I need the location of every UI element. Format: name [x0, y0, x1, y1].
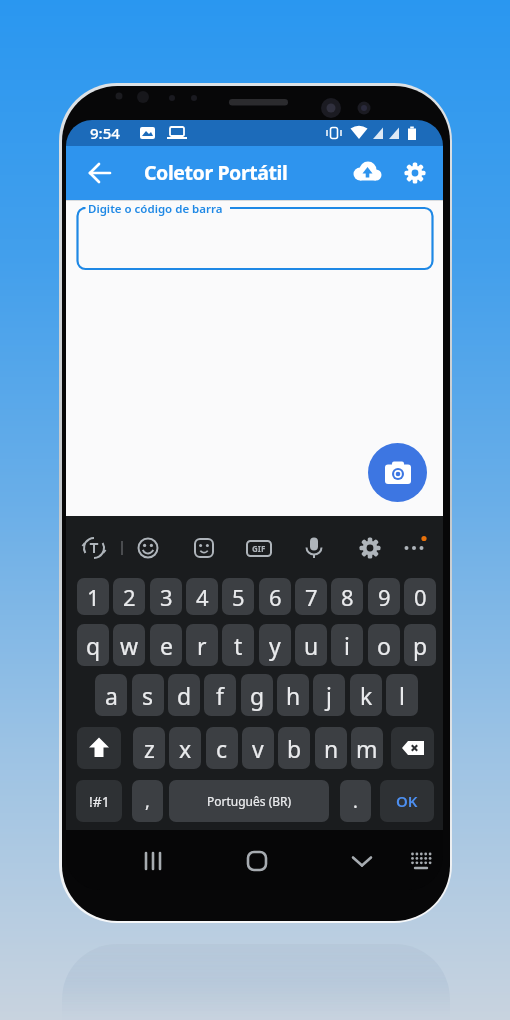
staticText: k [360, 680, 373, 711]
button[interactable] [395, 153, 435, 193]
staticText: Digite o código de barra [88, 201, 223, 217]
staticText: 0 [414, 582, 427, 612]
staticText: p [413, 630, 428, 661]
staticText: Coletor Portátil [144, 159, 288, 186]
staticText: b [287, 733, 302, 764]
button[interactable]: b [278, 727, 310, 769]
staticText: f [216, 680, 224, 711]
button[interactable]: t [222, 624, 254, 666]
staticText: 6 [269, 582, 282, 612]
button[interactable]: k [350, 674, 382, 716]
staticText: OK [396, 791, 418, 811]
button[interactable] [133, 533, 163, 563]
button[interactable]: 2 [113, 578, 145, 615]
button[interactable]: !#1 [76, 780, 122, 822]
button[interactable] [138, 846, 168, 876]
button[interactable]: e [150, 624, 182, 666]
staticText: d [177, 680, 192, 711]
button[interactable]: r [186, 624, 218, 666]
staticText: h [286, 680, 301, 711]
button[interactable]: z [133, 727, 165, 769]
button[interactable] [368, 443, 427, 502]
staticText: . [353, 789, 358, 814]
staticText: 9 [378, 582, 391, 612]
staticText: !#1 [89, 792, 110, 811]
staticText: 8 [341, 582, 354, 612]
button[interactable]: y [259, 624, 291, 666]
staticText: 1 [87, 582, 100, 612]
button[interactable] [79, 533, 109, 563]
button[interactable]: 7 [295, 578, 327, 615]
staticText: e [160, 630, 173, 661]
button[interactable]: q [77, 624, 109, 666]
staticText: x [179, 733, 192, 764]
staticText: j [326, 680, 332, 711]
button[interactable]: s [132, 674, 164, 716]
button[interactable] [76, 208, 434, 269]
staticText: w [120, 630, 139, 661]
staticText: 3 [160, 582, 173, 612]
staticText: 9:54 [90, 123, 120, 143]
staticText: a [105, 680, 118, 711]
button[interactable] [242, 846, 272, 876]
button[interactable]: o [368, 624, 400, 666]
button[interactable]: GIF [246, 540, 272, 557]
button[interactable]: , [132, 780, 163, 822]
button[interactable]: OK [380, 780, 434, 822]
button[interactable]: 0 [404, 578, 436, 615]
button[interactable]: a [95, 674, 127, 716]
button[interactable] [347, 846, 377, 876]
staticText: s [142, 680, 154, 711]
button[interactable]: m [351, 727, 383, 769]
staticText: q [86, 630, 101, 661]
staticText: m [356, 733, 378, 764]
button[interactable]: 5 [222, 578, 254, 615]
staticText: g [250, 680, 265, 711]
button[interactable]: u [295, 624, 327, 666]
button[interactable]: Português (BR) [169, 780, 329, 822]
button[interactable] [80, 153, 120, 193]
button[interactable]: w [113, 624, 145, 666]
button[interactable]: 6 [259, 578, 291, 615]
button[interactable]: h [277, 674, 309, 716]
button[interactable]: i [331, 624, 363, 666]
staticText: Português (BR) [207, 793, 292, 809]
staticText: z [144, 733, 155, 764]
staticText: l [399, 680, 405, 711]
staticText: 2 [123, 582, 136, 612]
button[interactable] [299, 533, 329, 563]
staticText: c [216, 733, 228, 764]
button[interactable]: j [313, 674, 345, 716]
button[interactable] [355, 533, 385, 563]
button[interactable]: 9 [368, 578, 400, 615]
staticText: n [324, 733, 339, 764]
button[interactable] [399, 533, 429, 563]
button[interactable]: d [168, 674, 200, 716]
staticText: u [304, 630, 319, 661]
button[interactable]: 3 [150, 578, 182, 615]
button[interactable]: l [386, 674, 418, 716]
button[interactable]: 1 [77, 578, 109, 615]
staticText: GIF [252, 543, 266, 554]
button[interactable]: c [206, 727, 238, 769]
button[interactable]: p [404, 624, 436, 666]
staticText: v [252, 733, 264, 764]
button[interactable]: g [241, 674, 273, 716]
button[interactable]: . [340, 780, 371, 822]
staticText: 4 [196, 582, 209, 612]
button[interactable]: v [242, 727, 274, 769]
button[interactable]: 4 [186, 578, 218, 615]
button[interactable]: 8 [331, 578, 363, 615]
staticText: y [269, 630, 281, 661]
button[interactable]: n [315, 727, 347, 769]
button[interactable] [406, 846, 436, 876]
button[interactable] [347, 153, 387, 193]
button[interactable] [77, 727, 121, 769]
staticText: 7 [305, 582, 318, 612]
button[interactable]: x [169, 727, 201, 769]
staticText: , [145, 789, 150, 814]
button[interactable]: f [204, 674, 236, 716]
button[interactable] [391, 727, 434, 769]
staticText: r [197, 630, 207, 661]
button[interactable] [189, 533, 219, 563]
